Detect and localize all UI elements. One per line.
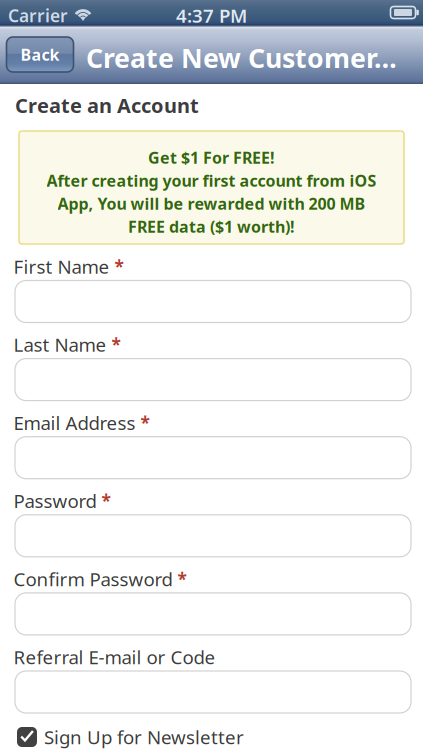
staticText: Create New Customer… [86, 40, 397, 75]
staticText: Password [13, 488, 96, 513]
staticText: First Name [13, 254, 109, 279]
staticText: App, You will be rewarded with 200 MB [57, 193, 365, 214]
button[interactable] [15, 280, 411, 322]
staticText: * [177, 567, 186, 590]
staticText: Last Name [13, 332, 106, 357]
button[interactable] [15, 671, 411, 713]
staticText: Back [20, 44, 59, 65]
button[interactable] [15, 437, 411, 479]
staticText: Sign Up for Newsletter [44, 725, 244, 749]
staticText: FREE data ($1 worth)! [128, 216, 295, 237]
button[interactable] [15, 515, 411, 557]
staticText: Email Address [13, 410, 135, 435]
button[interactable] [15, 359, 411, 401]
button[interactable]: Back [6, 37, 73, 72]
staticText: Get $1 For FREE! [148, 147, 275, 168]
staticText: Referral E-mail or Code [13, 645, 215, 669]
staticText: * [140, 411, 149, 434]
staticText: Create an Account [15, 92, 199, 119]
staticText: * [111, 333, 120, 356]
staticText: * [101, 489, 110, 512]
button[interactable]: Sign Up for Newsletter [17, 726, 413, 748]
staticText: After creating your first account from i… [46, 170, 376, 191]
staticText: Confirm Password [13, 566, 172, 591]
staticText: * [114, 255, 123, 278]
staticText: 4:37 PM [176, 3, 247, 28]
staticText: Carrier [8, 4, 68, 27]
button[interactable] [15, 593, 411, 635]
